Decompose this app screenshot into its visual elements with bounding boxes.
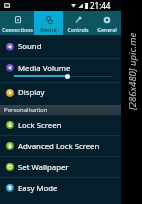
button[interactable]: Sound: [0, 35, 121, 58]
button[interactable]: Connections: [0, 11, 34, 35]
button[interactable]: General: [93, 11, 121, 35]
staticText: Media Volume: [18, 63, 71, 74]
staticText: Lock Screen: [18, 120, 62, 131]
button[interactable]: Device: [34, 11, 63, 35]
staticText: Device: [40, 27, 57, 34]
staticText: Easy Mode: [18, 183, 58, 194]
staticText: Controls: [67, 27, 89, 34]
button[interactable]: Easy Mode: [0, 178, 121, 198]
button[interactable]: Advanced Lock Screen: [0, 136, 121, 156]
staticText: General: [97, 27, 117, 34]
staticText: Sound: [18, 41, 42, 52]
button[interactable]: Controls: [63, 11, 93, 35]
button[interactable]: Set Wallpaper: [0, 157, 121, 177]
button[interactable]: Media Volume: [0, 59, 121, 82]
staticText: 21:44: [90, 0, 111, 11]
button[interactable]: Display: [0, 83, 121, 102]
staticText: Display: [18, 87, 45, 98]
staticText: Connections: [2, 27, 33, 34]
staticText: Advanced Lock Screen: [18, 141, 100, 152]
button[interactable]: Lock Screen: [0, 115, 121, 135]
staticText: [286x480] upic.me: [126, 32, 139, 110]
staticText: Set Wallpaper: [18, 162, 69, 173]
staticText: Personalisation: [4, 106, 48, 114]
